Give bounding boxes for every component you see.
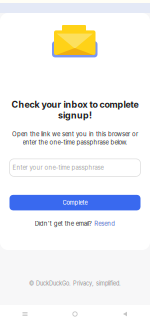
staticText: enter the one-time passphrase below. xyxy=(22,139,127,146)
staticText: Enter your one-time passphrase xyxy=(12,164,103,171)
staticText: Didn't get the email? xyxy=(35,220,92,227)
staticText: signup! xyxy=(58,110,92,121)
button[interactable]: Home xyxy=(50,305,100,323)
staticText: Open the link we sent you in this browse… xyxy=(12,131,138,138)
staticText: Check your inbox to complete xyxy=(11,99,138,110)
staticText: Complete xyxy=(62,199,87,206)
button[interactable]: Complete xyxy=(9,195,140,210)
button[interactable]: Resend xyxy=(94,220,115,227)
staticText: Resend xyxy=(94,220,115,227)
staticText: © DuckDuckGo. Privacy, simplified. xyxy=(29,280,121,287)
button[interactable]: Recent apps xyxy=(0,305,50,323)
button[interactable]: Back xyxy=(100,305,150,323)
